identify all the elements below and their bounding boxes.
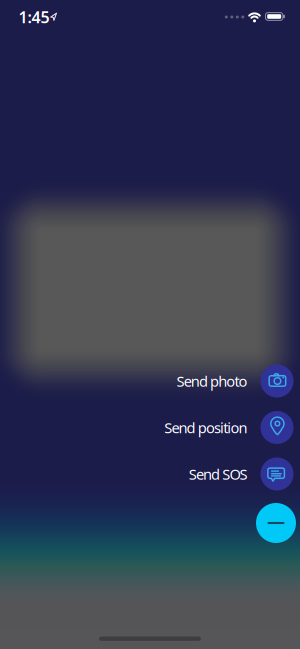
- button[interactable]: Send SOS: [189, 457, 293, 490]
- staticText: Send position: [164, 418, 247, 437]
- staticText: Send SOS: [189, 464, 247, 484]
- button[interactable]: Close menu: [256, 503, 296, 543]
- button[interactable]: Send photo: [177, 364, 293, 397]
- staticText: 1:45: [18, 6, 49, 28]
- button[interactable]: Send position: [164, 411, 293, 444]
- staticText: Send photo: [177, 371, 247, 391]
